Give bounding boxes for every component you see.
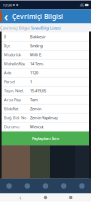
button[interactable]: Home [0, 178, 18, 193]
staticText: Mahalle/Köy [4, 61, 25, 66]
button[interactable]: Home [40, 193, 50, 201]
staticText: İlçe [4, 43, 10, 48]
button[interactable]: Add [36, 178, 55, 193]
staticText: Bağ. Böl. No [4, 115, 26, 120]
staticText: 1120 [30, 70, 38, 75]
staticText: İl [4, 34, 6, 39]
button[interactable]: Search [18, 178, 36, 193]
button[interactable]: List [55, 178, 73, 193]
staticText: Zemin Yapılmaz [30, 115, 58, 120]
staticText: Tam [30, 97, 38, 102]
staticText: ‹ [4, 8, 8, 24]
staticText: Sınav/Bilgi Listesi [31, 25, 61, 31]
button[interactable]: More [73, 178, 91, 193]
staticText: Blok/Kat [4, 106, 18, 111]
button[interactable]: Çevrimiçi Bilgisi [0, 23, 30, 32]
button[interactable]: Recents [66, 193, 76, 201]
staticText: Balıkesir [30, 34, 46, 39]
staticText: Çevrimiçi Bilgisi [0, 25, 30, 31]
staticText: Taşın. Nitel. [4, 88, 24, 93]
staticText: Milli E. [30, 52, 42, 57]
staticText: Mevcut [30, 124, 43, 129]
button[interactable]: Back [15, 193, 25, 201]
button[interactable]: Paylaşılanı İste [0, 131, 91, 145]
staticText: 46 [80, 2, 84, 8]
staticText: Paylaşılanı İste [32, 136, 59, 141]
staticText: 1 [30, 79, 32, 84]
staticText: 15.419,65 [30, 88, 46, 93]
staticText: Arsa Payı [4, 97, 21, 102]
staticText: 14 Tem. [30, 61, 44, 66]
staticText: Çevrimiçi Bilgisi [12, 12, 63, 21]
staticText: Sındırgı [30, 43, 43, 48]
staticText: Müdürlük [4, 52, 21, 57]
staticText: ‹ [19, 193, 21, 202]
button[interactable]: Sınav/Bilgi Listesi [30, 23, 62, 32]
button[interactable]: Back [0, 9, 12, 23]
staticText: 10:04 [2, 2, 11, 8]
staticText: Parsel [4, 79, 15, 84]
staticText: Durumu [4, 124, 19, 129]
staticText: Zemin [30, 106, 41, 111]
staticText: Ada [4, 70, 11, 75]
